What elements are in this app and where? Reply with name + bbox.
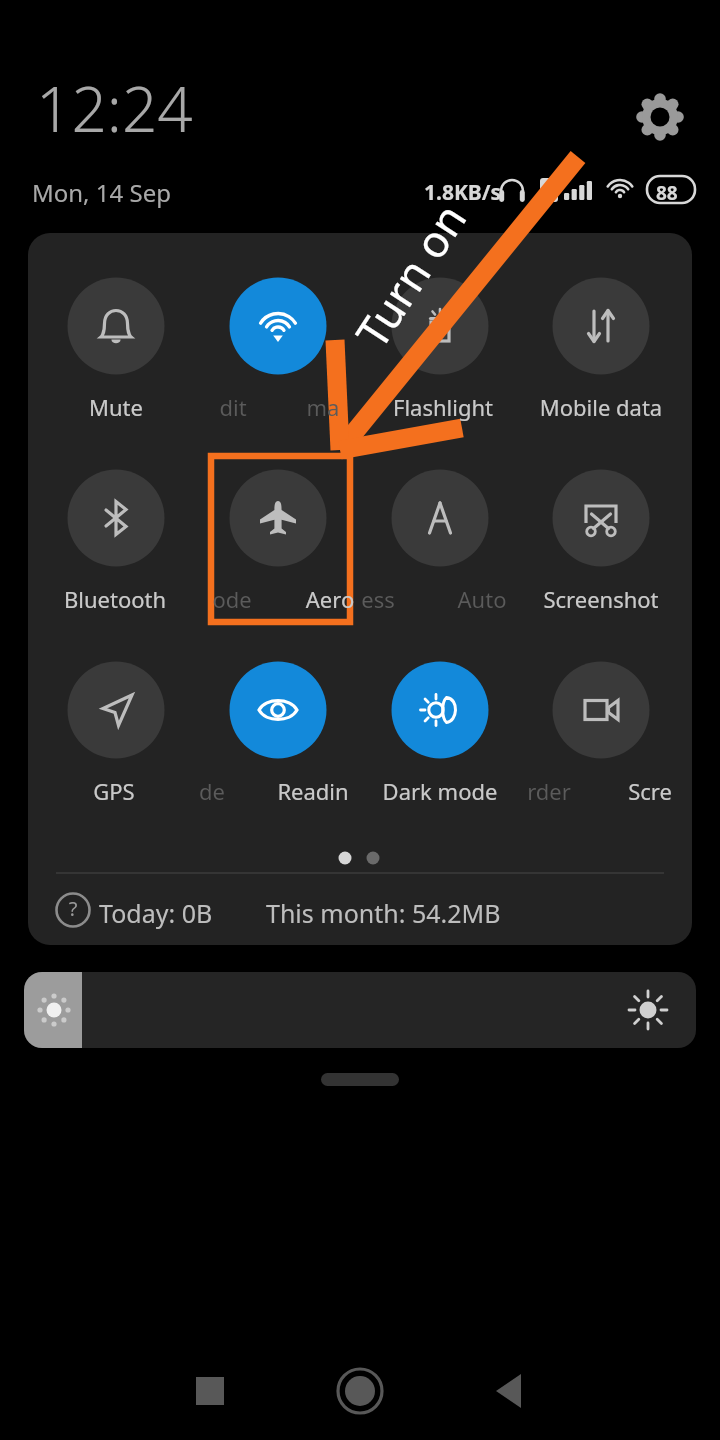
staticText: Mute: [0, 392, 236, 422]
staticText: Aero: [210, 584, 450, 614]
button[interactable]: Home: [320, 1351, 400, 1431]
button[interactable]: Back: [470, 1351, 550, 1431]
staticText: dit: [113, 392, 353, 422]
staticText: ess: [258, 584, 498, 614]
button[interactable]: GPS: [44, 652, 188, 792]
staticText: Mon, 14 Sep: [32, 176, 171, 209]
staticText: Readin: [193, 776, 433, 806]
staticText: Turn on: [341, 191, 479, 359]
button[interactable]: Reading mode: [206, 652, 350, 792]
staticText: This month: 54.2MB: [266, 896, 501, 930]
button[interactable]: Flashlight: [368, 268, 512, 408]
staticText: Scre: [530, 776, 720, 806]
staticText: rder: [429, 776, 669, 806]
button[interactable]: Screen recorder: [529, 652, 673, 792]
staticText: Dark mode: [320, 776, 560, 806]
staticText: de: [92, 776, 332, 806]
staticText: Auto: [362, 584, 602, 614]
staticText: ?: [0, 895, 193, 922]
staticText: Screenshot: [481, 584, 720, 614]
staticText: 88: [656, 180, 678, 206]
button[interactable]: Settings: [628, 85, 692, 149]
staticText: GPS: [0, 776, 234, 806]
button[interactable]: Mobile data: [529, 268, 673, 408]
button[interactable]: Aeroplane mode: [206, 460, 350, 600]
staticText: 1.8KB/s: [424, 178, 502, 207]
staticText: 12:24: [36, 66, 193, 150]
staticText: Mobile data: [481, 392, 720, 422]
staticText: Bluetooth: [0, 584, 235, 614]
button[interactable]: Recents: [170, 1351, 250, 1431]
button[interactable]: Dark mode: [368, 652, 512, 792]
staticText: ode: [112, 584, 352, 614]
button[interactable]: Bluetooth: [44, 460, 188, 600]
staticText: Flashlight: [323, 392, 563, 422]
button[interactable]: Auto brightness: [368, 460, 512, 600]
button[interactable]: Mute: [44, 268, 188, 408]
button[interactable]: Screenshot: [529, 460, 673, 600]
staticText: Today: 0B: [99, 896, 213, 930]
button[interactable]: Brightness: [24, 972, 696, 1048]
staticText: ma: [203, 392, 443, 422]
button[interactable]: WiFi: [206, 268, 350, 408]
